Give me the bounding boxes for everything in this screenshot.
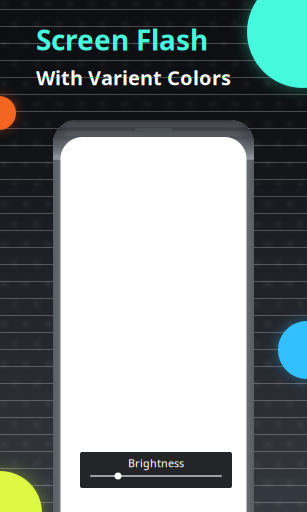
button[interactable]: Brightness — [80, 452, 232, 488]
staticText: Screen Flash — [36, 21, 208, 58]
staticText: With Varient Colors — [36, 64, 231, 91]
staticText: Brightness — [128, 456, 184, 470]
